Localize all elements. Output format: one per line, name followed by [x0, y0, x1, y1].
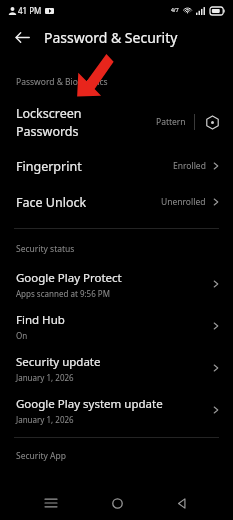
staticText: Security App — [16, 450, 66, 462]
staticText: Password & Security — [44, 28, 178, 47]
staticText: Fingerprint — [16, 158, 173, 175]
staticText: Google Play Protect — [16, 270, 122, 286]
button[interactable]: Security update — [0, 347, 233, 389]
staticText: Lockscreen — [16, 105, 82, 122]
button[interactable]: Google Play system update — [0, 389, 233, 431]
staticText: Find Hub — [16, 312, 65, 328]
staticText: Face Unlock — [16, 194, 161, 211]
staticText: Password & Biometrics — [16, 76, 108, 88]
staticText: 4/7 — [171, 7, 179, 14]
staticText: 41 PM — [18, 5, 42, 16]
staticText: Passwords — [16, 123, 79, 140]
staticText: Pattern — [156, 116, 186, 128]
button[interactable]: Find Hub — [0, 305, 233, 347]
staticText: Security update — [16, 354, 101, 370]
staticText: January 1, 2026 — [16, 414, 74, 425]
button[interactable]: Back — [8, 23, 36, 51]
button[interactable]: Face Unlock — [0, 184, 233, 220]
staticText: Unenrolled — [161, 196, 206, 208]
staticText: Google Play system update — [16, 396, 163, 412]
staticText: On — [16, 330, 28, 341]
staticText: Security status — [16, 243, 75, 255]
button[interactable]: Recents — [36, 488, 66, 518]
staticText: Apps scanned at 9:56 PM — [16, 288, 110, 299]
staticText: Enrolled — [173, 160, 206, 172]
button[interactable]: Home — [102, 488, 132, 518]
button[interactable]: Back — [167, 488, 197, 518]
button[interactable]: Google Play Protect — [0, 263, 233, 305]
staticText: January 1, 2026 — [16, 372, 74, 383]
button[interactable]: Lockscreen password settings — [201, 111, 223, 133]
button[interactable]: Lockscreen — [0, 96, 233, 148]
button[interactable]: Fingerprint — [0, 148, 233, 184]
